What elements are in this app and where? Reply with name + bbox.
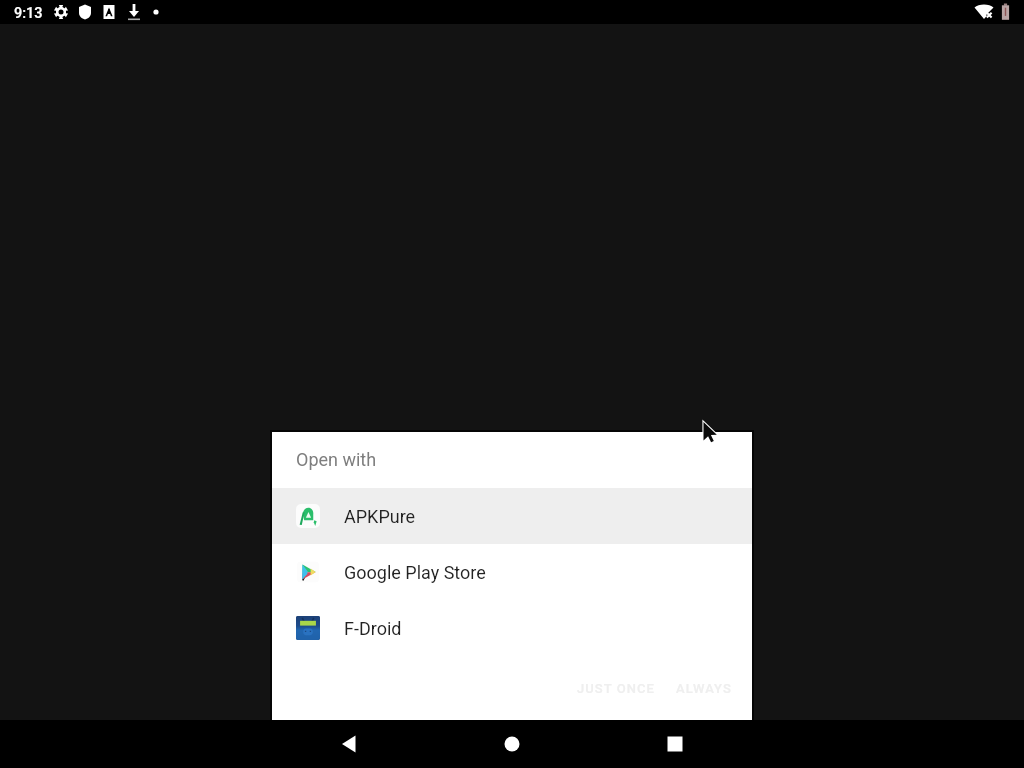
button[interactable]: JUST ONCE bbox=[569, 673, 663, 704]
button[interactable]: Google Play Store bbox=[272, 544, 752, 600]
button[interactable]: Back bbox=[325, 720, 373, 768]
staticText: ALWAYS bbox=[676, 681, 732, 696]
staticText: APKPure bbox=[344, 506, 416, 527]
staticText: F-Droid bbox=[344, 618, 402, 639]
staticText: Open with bbox=[296, 449, 377, 470]
button[interactable]: APKPure bbox=[272, 488, 752, 544]
button[interactable]: F-Droid bbox=[272, 600, 752, 656]
button[interactable]: Home bbox=[488, 720, 536, 768]
staticText: Google Play Store bbox=[344, 562, 486, 583]
staticText: 9:13 bbox=[14, 5, 43, 22]
button[interactable]: Recent apps bbox=[651, 720, 699, 768]
button[interactable]: ALWAYS bbox=[668, 673, 740, 704]
staticText: JUST ONCE bbox=[577, 681, 655, 696]
